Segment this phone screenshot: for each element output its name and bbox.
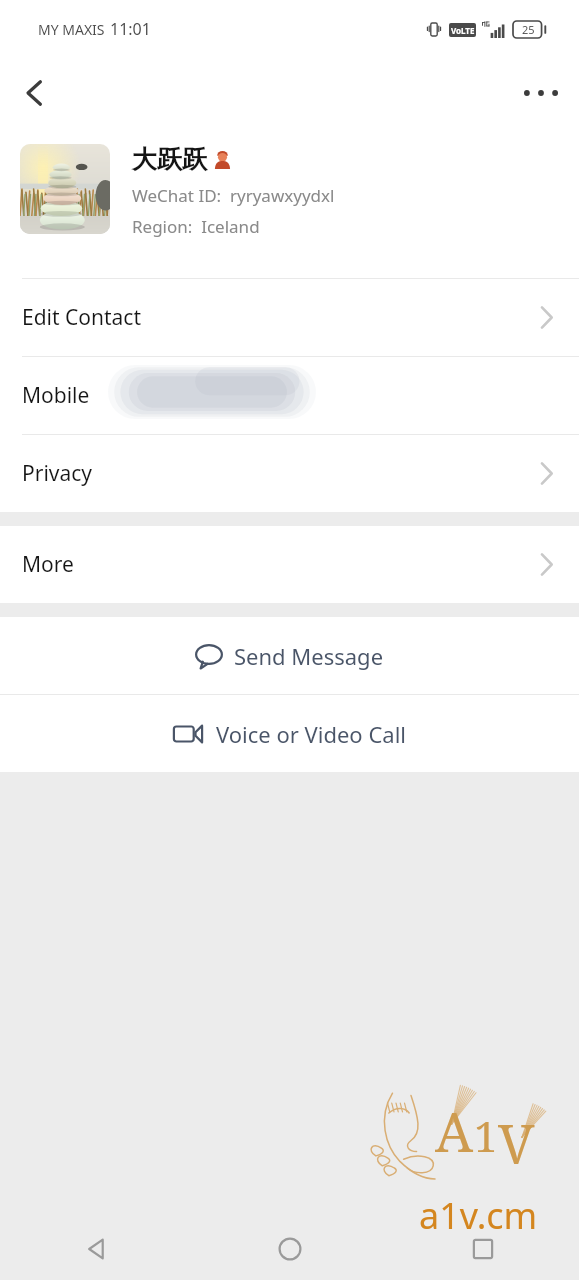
staticText: 11:01 [110,18,151,40]
button[interactable]: Profile photo [0,128,579,278]
button[interactable]: Edit Contact [0,279,579,356]
staticText: 大跃跃 [132,144,207,175]
staticText: More [22,550,74,579]
staticText: Send Message [234,641,384,671]
staticText: V [498,1106,535,1180]
staticText: Mobile [22,381,90,410]
staticText: 1 [474,1107,498,1164]
staticText: Privacy [22,459,93,488]
button[interactable]: Send Message [0,617,579,694]
staticText: a1v.cm [419,1191,538,1240]
button[interactable]: Voice or Video Call [0,695,579,772]
button[interactable]: Mobile [0,357,579,434]
staticText: A [435,1094,474,1168]
button[interactable]: More [0,526,579,603]
staticText: MY MAXIS [38,20,105,39]
staticText: Region: Iceland [132,215,260,238]
staticText: 25 [522,22,535,37]
button[interactable]: Recent apps [386,1218,579,1280]
staticText: VoLTE [451,25,475,36]
button[interactable]: Home [193,1218,386,1280]
staticText: WeChat ID: ryryawxyydxl [132,184,335,207]
button[interactable]: Back [0,1218,193,1280]
button[interactable]: Profile photo [20,144,110,234]
button[interactable]: Privacy [0,435,579,512]
staticText: Voice or Video Call [216,719,406,749]
staticText: Edit Contact [22,303,142,332]
button[interactable]: More options [515,67,567,119]
button[interactable]: Back [8,67,60,119]
